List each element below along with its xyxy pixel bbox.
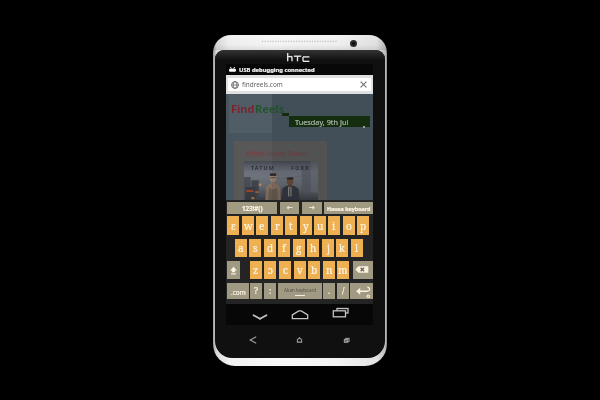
staticText: r xyxy=(275,219,280,233)
staticText: y xyxy=(303,219,309,233)
staticText: → xyxy=(309,204,315,212)
button[interactable]: Clear address xyxy=(360,81,367,88)
staticText: i xyxy=(332,219,336,233)
button[interactable]: findreels.com xyxy=(228,78,371,91)
staticText: findreels.com xyxy=(242,80,283,89)
staticText: USB debugging connected xyxy=(239,66,315,74)
button[interactable]: ɛ xyxy=(227,216,239,235)
staticText: 123!#() xyxy=(242,204,263,212)
button[interactable]: Tuesday, 9th Jul xyxy=(289,116,370,127)
button[interactable]: b xyxy=(308,261,320,279)
button[interactable]: Back xyxy=(230,331,276,349)
button[interactable]: Backspace xyxy=(353,261,373,279)
staticText: . xyxy=(328,285,331,296)
staticText: p xyxy=(360,219,367,233)
staticText: u xyxy=(317,219,324,233)
button[interactable]: m xyxy=(337,261,349,279)
button[interactable]: Home xyxy=(276,331,323,349)
button[interactable]: a xyxy=(235,239,247,257)
staticText: .com xyxy=(231,288,246,297)
button[interactable]: ɔ xyxy=(264,261,276,279)
button[interactable]: . xyxy=(323,283,335,299)
button[interactable]: c xyxy=(279,261,291,279)
button[interactable]: : xyxy=(264,283,276,299)
staticText: j xyxy=(327,241,330,255)
staticText: t xyxy=(289,219,293,233)
button[interactable]: z xyxy=(250,261,262,279)
button[interactable]: t xyxy=(285,216,297,235)
button[interactable]: Recent apps xyxy=(323,331,370,349)
button[interactable]: USB debugging connected xyxy=(226,64,373,75)
button[interactable]: v xyxy=(294,261,306,279)
staticText: ɛ xyxy=(231,219,236,233)
staticText: f xyxy=(282,241,286,255)
staticText: z xyxy=(253,263,259,277)
button[interactable]: p xyxy=(357,216,369,235)
button[interactable]: 123!#() xyxy=(227,202,277,214)
staticText: k xyxy=(339,241,345,255)
button[interactable]: Enter xyxy=(350,283,373,299)
button[interactable]: → xyxy=(302,202,322,214)
staticText: Tuesday, 9th Jul xyxy=(295,117,349,127)
staticText: g xyxy=(296,241,302,255)
button[interactable]: y xyxy=(300,216,312,235)
button[interactable]: e xyxy=(256,216,268,235)
button[interactable]: ← xyxy=(280,202,299,214)
button[interactable]: ? xyxy=(250,283,262,299)
button[interactable]: Akan keyboard xyxy=(278,283,322,299)
button[interactable]: / xyxy=(337,283,349,299)
button[interactable]: Shift xyxy=(227,261,240,279)
staticText: s xyxy=(253,241,258,255)
button[interactable]: n xyxy=(323,261,335,279)
staticText: h xyxy=(310,241,317,255)
button[interactable]: Recent apps xyxy=(329,305,351,324)
staticText: Reels xyxy=(255,101,285,116)
button[interactable]: j xyxy=(322,239,334,257)
button[interactable]: Hide keyboard xyxy=(250,306,270,325)
staticText: v xyxy=(297,263,303,277)
button[interactable]: i xyxy=(328,216,340,235)
staticText: o xyxy=(346,219,352,233)
staticText: ← xyxy=(287,204,293,212)
staticText: m xyxy=(338,263,348,277)
staticText: / xyxy=(342,285,345,297)
staticText: TATUM xyxy=(251,164,275,171)
button[interactable]: r xyxy=(271,216,283,235)
staticText: Hausa keyboard xyxy=(327,205,371,212)
staticText: ? xyxy=(254,285,259,297)
button[interactable]: l xyxy=(351,239,363,257)
button[interactable]: Home xyxy=(290,305,310,324)
staticText: Find xyxy=(231,101,255,116)
staticText: Akan keyboard xyxy=(284,287,317,293)
button[interactable]: .com xyxy=(227,283,249,299)
button[interactable]: s xyxy=(249,239,261,257)
button[interactable]: h xyxy=(307,239,319,257)
staticText: ɔ xyxy=(268,263,273,277)
button[interactable]: k xyxy=(336,239,348,257)
button[interactable]: o xyxy=(343,216,355,235)
button[interactable]: Hausa keyboard xyxy=(324,202,373,214)
button[interactable]: w xyxy=(242,216,254,235)
button[interactable]: d xyxy=(264,239,276,257)
staticText: e xyxy=(259,219,265,233)
staticText: White House Down xyxy=(245,149,307,158)
button[interactable]: g xyxy=(293,239,305,257)
staticText: : xyxy=(269,285,272,297)
button[interactable]: White House Down xyxy=(234,141,327,202)
staticText: c xyxy=(283,263,288,277)
staticText: l xyxy=(355,241,359,255)
staticText: d xyxy=(267,241,274,255)
staticText: a xyxy=(238,241,244,255)
button[interactable]: u xyxy=(314,216,326,235)
staticText: b xyxy=(311,263,318,277)
staticText: w xyxy=(244,219,253,233)
staticText: n xyxy=(326,263,333,277)
staticText: FOXX xyxy=(291,164,310,171)
button[interactable]: f xyxy=(278,239,290,257)
